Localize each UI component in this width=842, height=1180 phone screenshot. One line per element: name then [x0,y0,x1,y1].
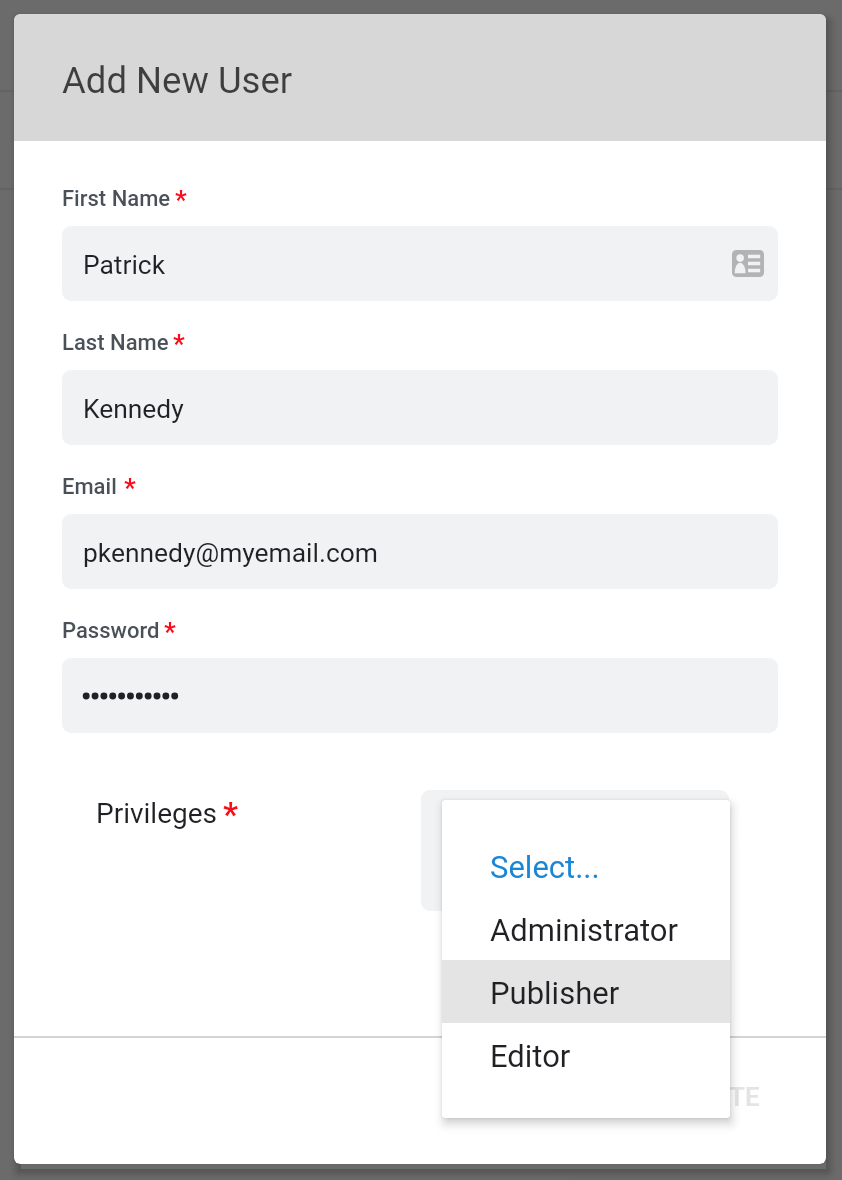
staticText: Publisher [490,975,620,1011]
staticText: * [124,473,136,503]
staticText: * [164,617,176,647]
button[interactable]: Select... [442,834,730,897]
staticText: CREATE [665,1082,760,1112]
button[interactable]: Administrator [442,897,730,960]
button[interactable]: Publisher [442,960,730,1023]
button[interactable]: Editor [442,1023,730,1086]
button[interactable]: Kennedy [62,370,778,445]
staticText: Administrator [490,912,679,948]
button[interactable]: CREATE [644,1070,780,1124]
staticText: Add New User [62,59,293,102]
button[interactable] [421,790,729,911]
staticText: Email [62,474,117,500]
button[interactable] [62,658,778,733]
staticText: * [175,185,187,215]
button[interactable]: Privileges [92,790,242,834]
staticText: pkennedy@myemail.com [83,538,378,569]
staticText: Patrick [83,250,166,281]
button[interactable]: pkennedy@myemail.com [62,514,778,589]
staticText: Editor [490,1038,571,1074]
button[interactable]: Choose contact [732,250,764,277]
staticText: Kennedy [83,394,184,425]
staticText: Privileges [96,797,218,830]
staticText: Password [62,618,160,644]
staticText: Select... [490,849,600,885]
staticText: Last Name [62,330,169,356]
staticText: First Name [62,186,171,212]
button[interactable]: Patrick [62,226,778,301]
staticText: * [173,329,185,359]
staticText: * [223,795,238,834]
